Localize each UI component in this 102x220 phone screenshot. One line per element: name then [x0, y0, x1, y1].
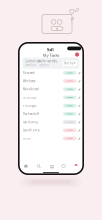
staticText: Completed — [66, 88, 73, 90]
button[interactable]: Retro — [20, 134, 82, 143]
button[interactable]: Tasks — [45, 162, 57, 170]
staticText: Research — [23, 71, 35, 75]
button[interactable]: Home — [20, 162, 32, 170]
staticText: Pending — [67, 129, 73, 131]
button[interactable]: Launch prep — [20, 126, 82, 134]
button[interactable]: Search — [32, 162, 45, 170]
button[interactable]: Sort by — [63, 61, 77, 66]
staticText: My Tasks — [42, 53, 59, 58]
button[interactable]: UI Design — [20, 93, 82, 102]
staticText: Retro — [23, 137, 31, 140]
staticText: Completed — [66, 97, 73, 98]
staticText: Completed — [66, 72, 73, 74]
staticText: Completed — [66, 105, 73, 107]
staticText: Sort by — [64, 61, 73, 65]
staticText: UI Design — [23, 96, 37, 99]
staticText: timeline · others — [25, 63, 49, 67]
staticText: Wireframe — [23, 79, 36, 83]
staticText: Pending — [67, 138, 73, 139]
button[interactable]: Wireframe — [20, 77, 82, 85]
button[interactable]: Profile — [70, 162, 82, 170]
staticText: Current tasks for weekly — [25, 59, 57, 63]
button[interactable]: Prototype — [20, 102, 82, 110]
button[interactable]: Profile — [75, 52, 79, 57]
staticText: Pending — [67, 80, 73, 82]
staticText: QA testing — [23, 120, 38, 124]
staticText: Launch prep — [23, 128, 40, 132]
button[interactable]: QA testing — [20, 118, 82, 126]
staticText: 9:41 — [47, 47, 54, 52]
button[interactable]: Messages — [57, 162, 70, 170]
staticText: Prototype — [23, 104, 37, 107]
button[interactable]: Moodboard — [20, 85, 82, 93]
staticText: Moodboard — [23, 87, 39, 91]
staticText: Completed — [66, 113, 73, 115]
button[interactable]: Research — [20, 69, 82, 77]
button[interactable]: Dev handoff — [20, 110, 82, 118]
staticText: Dev handoff — [23, 112, 39, 116]
staticText: In review — [67, 121, 73, 123]
